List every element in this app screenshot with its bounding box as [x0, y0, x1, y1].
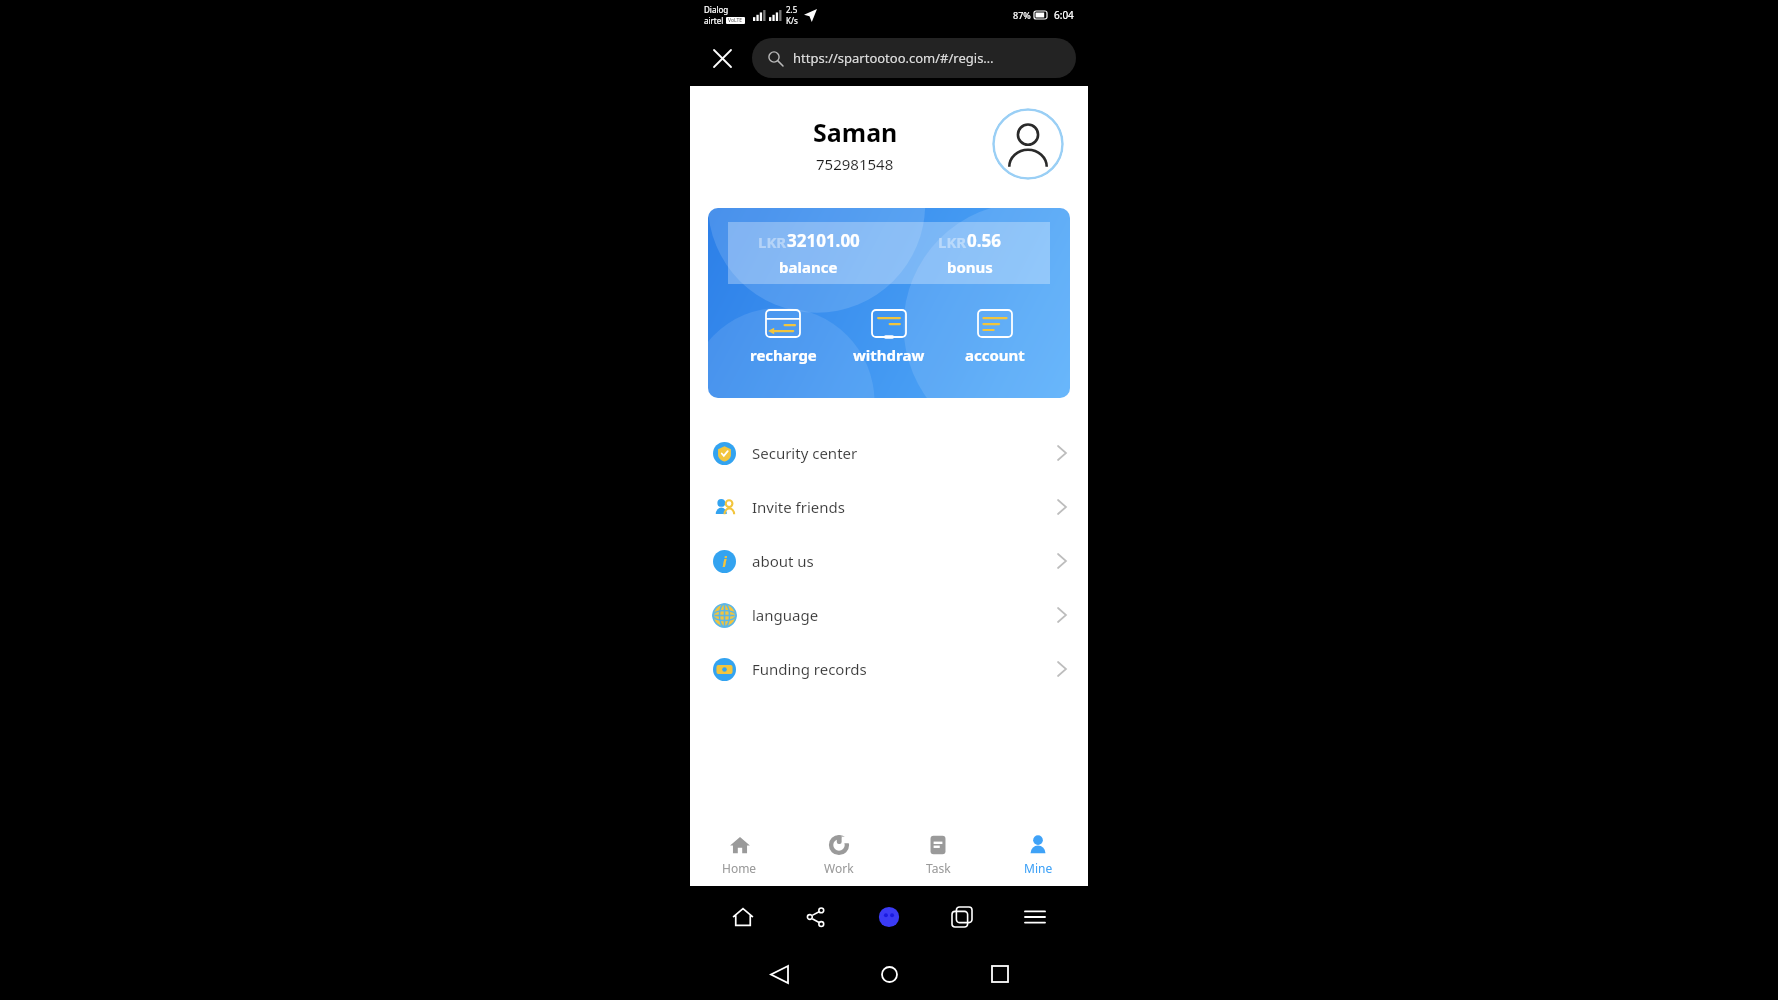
- staticText: 2.5: [786, 4, 798, 15]
- button[interactable]: Home: [690, 824, 789, 886]
- button[interactable]: Menu: [1015, 897, 1055, 937]
- staticText: account: [965, 345, 1025, 365]
- button[interactable]: Tabs: [942, 897, 982, 937]
- button[interactable]: Close: [702, 38, 742, 78]
- staticText: LKR: [758, 232, 787, 252]
- button[interactable]: account: [942, 308, 1048, 367]
- staticText: Invite friends: [752, 497, 845, 517]
- staticText: i: [722, 552, 727, 571]
- staticText: recharge: [750, 345, 817, 365]
- staticText: Home: [722, 860, 757, 876]
- staticText: VoLTE: [728, 17, 743, 24]
- staticText: about us: [752, 551, 814, 571]
- staticText: 87%: [1013, 9, 1031, 21]
- staticText: 32101.00: [787, 229, 860, 252]
- staticText: language: [752, 605, 819, 625]
- staticText: 6:04: [1054, 8, 1074, 22]
- button[interactable]: Home: [867, 952, 911, 996]
- staticText: 752981548: [816, 154, 894, 174]
- staticText: K/s: [786, 15, 798, 26]
- button[interactable]: Work: [789, 824, 888, 886]
- button[interactable]: recharge: [730, 308, 836, 367]
- staticText: Task: [926, 860, 951, 876]
- staticText: Mine: [1024, 860, 1053, 876]
- staticText: bonus: [947, 257, 993, 277]
- button[interactable]: Browser assistant: [869, 897, 909, 937]
- staticText: Dialog: [704, 4, 729, 15]
- button[interactable]: Back: [757, 952, 801, 996]
- button[interactable]: LKR: [708, 208, 1070, 398]
- button[interactable]: Security center: [690, 426, 1088, 480]
- staticText: withdraw: [853, 345, 925, 365]
- button[interactable]: Funding records: [690, 642, 1088, 696]
- button[interactable]: Task: [888, 824, 988, 886]
- button[interactable]: Mine: [988, 824, 1088, 886]
- staticText: Work: [824, 860, 854, 876]
- staticText: https://spartootoo.com/#/regis…: [793, 49, 994, 67]
- button[interactable]: Home: [723, 897, 763, 937]
- staticText: balance: [779, 257, 838, 277]
- staticText: 0.56: [967, 229, 1001, 252]
- staticText: Saman: [813, 115, 898, 149]
- button[interactable]: Recents: [978, 952, 1022, 996]
- staticText: Security center: [752, 443, 858, 463]
- button[interactable]: Profile avatar: [992, 108, 1064, 180]
- button[interactable]: https://spartootoo.com/#/regis…: [752, 38, 1076, 78]
- staticText: Funding records: [752, 659, 867, 679]
- staticText: LKR: [938, 232, 967, 252]
- button[interactable]: language: [690, 588, 1088, 642]
- button[interactable]: Invite friends: [690, 480, 1088, 534]
- button[interactable]: i: [690, 534, 1088, 588]
- button[interactable]: withdraw: [836, 308, 942, 367]
- staticText: airtel: [704, 15, 724, 26]
- button[interactable]: Share: [796, 897, 836, 937]
